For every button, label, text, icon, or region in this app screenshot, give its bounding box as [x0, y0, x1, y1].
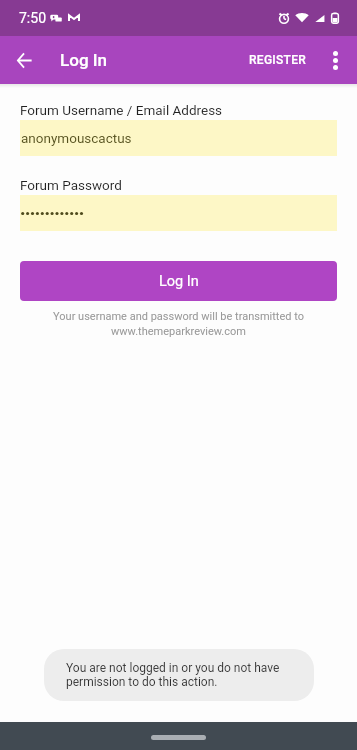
- button[interactable]: You are not logged in or you do not have…: [44, 649, 314, 701]
- button[interactable]: Log In: [20, 261, 337, 301]
- button[interactable]: More options: [317, 40, 357, 80]
- staticText: Your username and password will be trans…: [0, 310, 357, 338]
- button[interactable]: [20, 195, 337, 231]
- staticText: Log In: [60, 50, 108, 70]
- staticText: 7:50: [19, 10, 46, 26]
- staticText: REGISTER: [249, 53, 307, 67]
- staticText: Log In: [159, 273, 199, 290]
- button[interactable]: Back: [7, 43, 41, 77]
- staticText: You are not logged in or you do not have…: [66, 661, 280, 689]
- button[interactable]: REGISTER: [239, 45, 317, 75]
- button[interactable]: anonymouscactus: [20, 120, 337, 156]
- staticText: anonymouscactus: [21, 130, 132, 146]
- staticText: Forum Password: [20, 177, 122, 193]
- staticText: Forum Username / Email Address: [20, 102, 223, 118]
